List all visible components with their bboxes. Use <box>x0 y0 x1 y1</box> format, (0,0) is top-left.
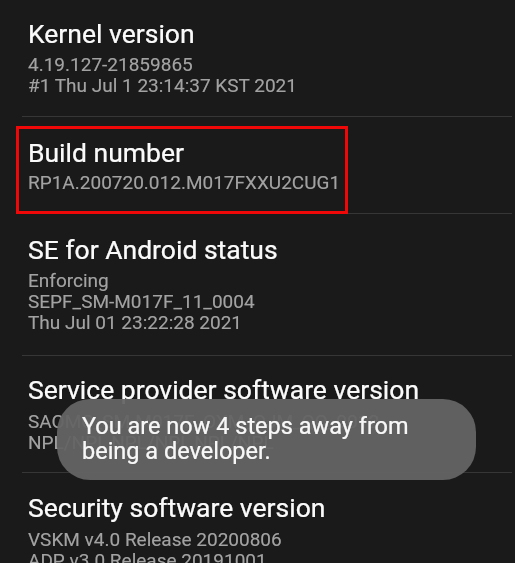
staticText: RP1A.200720.012.M017FXXU2CUG1 <box>28 173 341 194</box>
staticText: You are now 4 steps away from being a de… <box>82 414 409 464</box>
staticText: Enforcing SEPF_SM-M017F_11_0004 Thu Jul … <box>28 271 255 334</box>
staticText: SE for Android status <box>28 234 278 265</box>
staticText: Security software version <box>28 492 326 523</box>
staticText: VSKM v4.0 Release 20200806 ADP v3.0 Rele… <box>28 530 282 563</box>
staticText: SAOMC_SM-M017F_OXM_OJM_QQ_0012 NPL/NPL,N… <box>28 412 380 454</box>
button[interactable]: Service provider software version <box>0 355 515 472</box>
staticText: Build number <box>28 137 184 168</box>
button[interactable]: You are now 4 steps away from being a de… <box>57 399 476 480</box>
button[interactable]: SE for Android status <box>0 213 515 355</box>
staticText: Kernel version <box>28 18 195 49</box>
button[interactable]: Kernel version <box>0 0 515 116</box>
other: Build number highlight <box>16 126 348 214</box>
staticText: Service provider software version <box>28 374 420 405</box>
staticText: 4.19.127-21859865 #1 Thu Jul 1 23:14:37 … <box>28 55 297 97</box>
button[interactable]: Security software version <box>0 472 515 563</box>
button[interactable]: Build number <box>0 116 515 213</box>
